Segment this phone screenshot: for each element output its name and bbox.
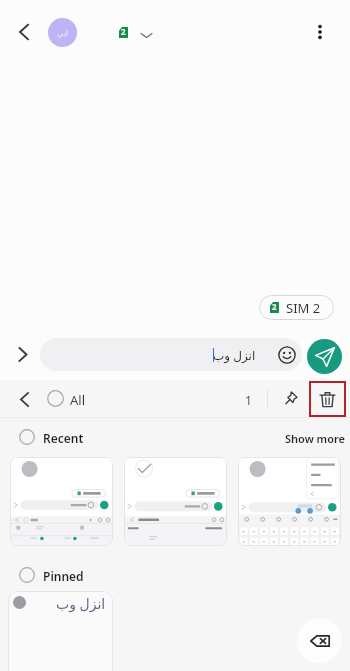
staticText: SIM 2 (286, 299, 321, 317)
staticText: 2 (272, 302, 277, 313)
staticText: ابي (57, 29, 69, 38)
button[interactable]: Delete (309, 381, 346, 417)
button[interactable]: More options (305, 17, 335, 47)
button[interactable]: Expand (8, 339, 38, 369)
staticText: Show more (285, 431, 345, 446)
button[interactable] (124, 457, 227, 546)
button[interactable]: انزل وب (8, 591, 113, 671)
button[interactable] (10, 457, 113, 546)
button[interactable]: Back (8, 16, 40, 48)
button[interactable]: Back (8, 383, 40, 415)
button[interactable]: Recent (43, 430, 84, 446)
button[interactable]: 2 (259, 295, 334, 320)
button[interactable]: Send (307, 339, 342, 374)
button[interactable]: Pinned (43, 568, 84, 584)
button[interactable]: انزل وب (40, 338, 302, 371)
button[interactable]: Change SIM (133, 22, 160, 49)
button[interactable] (238, 457, 341, 546)
staticText: انزل وب (213, 347, 256, 363)
staticText: 1 (245, 392, 252, 408)
button[interactable]: ابي (48, 18, 77, 47)
button[interactable]: Backspace (297, 618, 342, 663)
staticText: All (70, 391, 86, 409)
button[interactable]: Show more (283, 429, 347, 448)
button[interactable]: Pin (276, 383, 306, 413)
other: Emoji (277, 345, 297, 365)
staticText: 2 (121, 27, 126, 38)
staticText: انزل وب (56, 594, 106, 613)
